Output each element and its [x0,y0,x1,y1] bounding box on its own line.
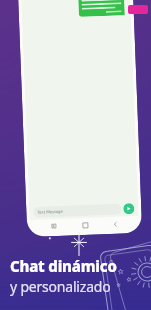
button[interactable]: Send [123,203,134,214]
staticText: Chat dinámico [10,256,117,276]
button[interactable]: Notification badge [128,5,148,14]
button[interactable] [78,0,125,17]
staticText: y personalizado [10,277,111,296]
button[interactable]: Recents [48,220,60,232]
button[interactable]: Text Message [33,203,122,218]
button[interactable]: Back [109,217,121,230]
button[interactable]: Home [79,219,91,231]
staticText: Text Message [37,209,63,215]
